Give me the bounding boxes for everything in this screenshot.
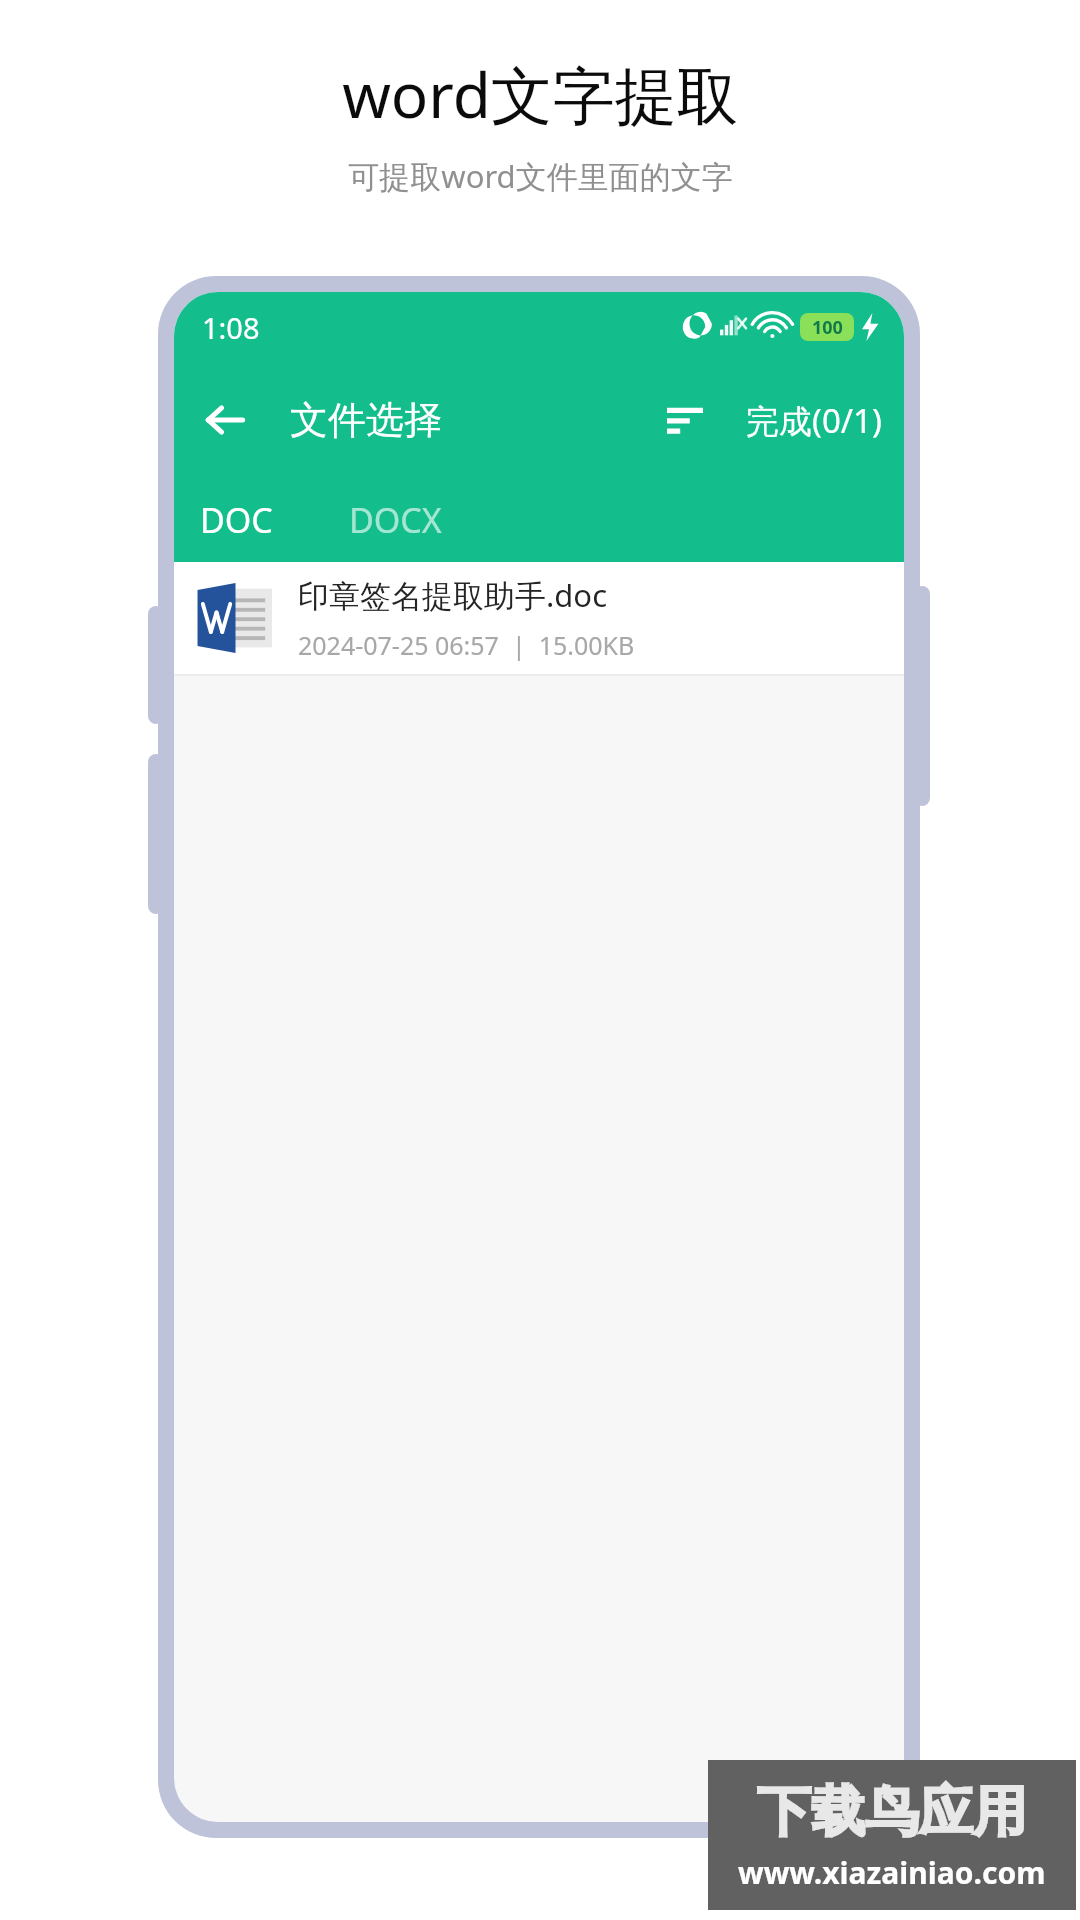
staticText: 印章签名提取助手.doc (298, 574, 608, 616)
button[interactable]: DOC (174, 487, 299, 553)
staticText: www.xiazainiao.com (738, 1852, 1046, 1893)
staticText: 下载鸟应用 (757, 1778, 1027, 1846)
staticText: 完成(0/1) (746, 398, 882, 443)
button[interactable]: Sort (646, 381, 724, 459)
button[interactable]: 完成(0/1) (724, 382, 904, 459)
button[interactable]: DOCX (339, 487, 452, 553)
staticText: 2024-07-25 06:57 | 15.00KB (298, 628, 635, 662)
button[interactable]: 印章签名提取助手.doc (174, 562, 904, 676)
staticText: word文字提取 (342, 52, 739, 137)
staticText: DOC (200, 497, 273, 543)
staticText: 100 (812, 315, 843, 340)
staticText: 可提取word文件里面的文字 (348, 155, 733, 197)
staticText: 文件选择 (290, 396, 442, 444)
button[interactable]: Back (188, 383, 262, 457)
staticText: 1:08 (202, 308, 260, 347)
staticText: DOCX (349, 497, 442, 543)
